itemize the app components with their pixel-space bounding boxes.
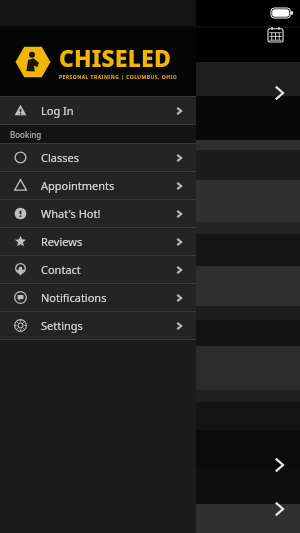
button[interactable]: Open item	[270, 84, 288, 102]
staticText: What's Hot!	[41, 206, 101, 221]
button[interactable]: Open item	[270, 500, 288, 518]
button[interactable]: Contact	[0, 256, 196, 283]
button[interactable]: What's Hot!	[0, 200, 196, 227]
staticText: Settings	[41, 318, 83, 333]
staticText: Classes	[41, 150, 79, 165]
button[interactable]: Calendar	[262, 21, 288, 47]
staticText: Notifications	[41, 290, 107, 305]
staticText: Contact	[41, 262, 81, 277]
button[interactable]: Classes	[0, 144, 196, 171]
button[interactable]: Log In	[0, 97, 196, 124]
button[interactable]: Open item	[270, 456, 288, 474]
staticText: Booking	[10, 129, 42, 140]
staticText: Reviews	[41, 234, 83, 249]
staticText: Log In	[41, 103, 74, 118]
staticText: CHISELED	[59, 42, 171, 73]
button[interactable]: Appointments	[0, 172, 196, 199]
staticText: Appointments	[41, 178, 115, 193]
button[interactable]: Reviews	[0, 228, 196, 255]
staticText: PERSONAL TRAINING | COLUMBUS, OHIO	[59, 74, 178, 81]
button[interactable]: Notifications	[0, 284, 196, 311]
button[interactable]: Settings	[0, 312, 196, 339]
